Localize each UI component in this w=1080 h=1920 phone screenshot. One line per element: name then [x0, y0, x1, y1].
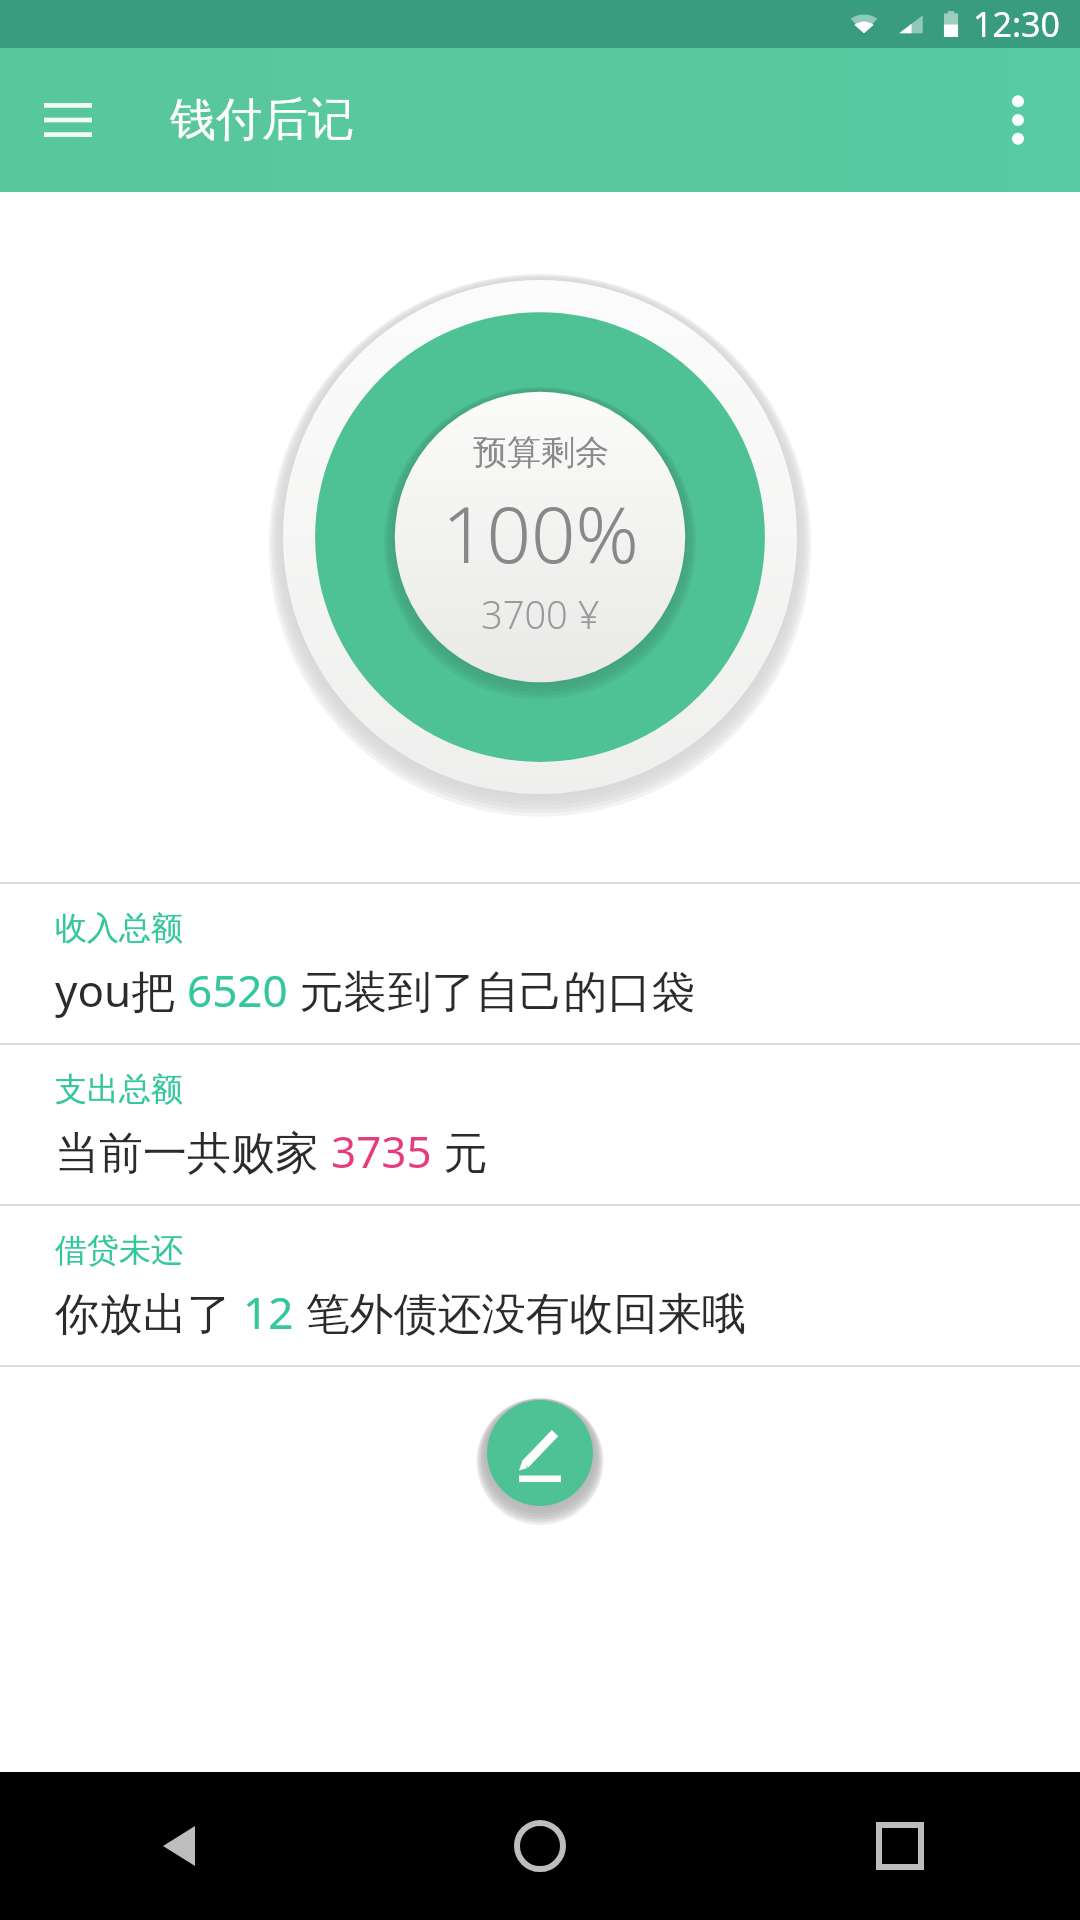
staticText: 当前一共败家 — [55, 1121, 331, 1181]
staticText: 支出总额 — [55, 1069, 183, 1109]
button[interactable]: Home — [360, 1772, 720, 1920]
staticText: 3735 — [331, 1121, 432, 1181]
staticText: 100% — [442, 480, 639, 586]
button[interactable]: Recent apps — [720, 1772, 1080, 1920]
staticText: 笔外债还没有收回来哦 — [294, 1282, 746, 1342]
staticText: 元装到了自己的口袋 — [288, 960, 696, 1020]
button[interactable]: More options — [978, 80, 1058, 160]
staticText: 借贷未还 — [55, 1230, 183, 1270]
staticText: 收入总额 — [55, 908, 183, 948]
button[interactable]: Navigation menu — [32, 84, 104, 156]
staticText: you把 — [55, 960, 187, 1020]
button[interactable]: 支出总额 — [0, 1045, 1080, 1204]
staticText: 12 — [243, 1282, 294, 1342]
staticText: 你放出了 — [55, 1282, 243, 1342]
button[interactable]: 收入总额 — [0, 884, 1080, 1043]
staticText: 预算剩余 — [473, 431, 609, 474]
staticText: 元 — [432, 1121, 488, 1181]
staticText: 钱付后记 — [170, 91, 354, 149]
staticText: 6520 — [187, 960, 288, 1020]
staticText: 12:30 — [973, 1, 1060, 47]
staticText: 3700 ¥ — [481, 588, 600, 640]
button[interactable]: Back — [0, 1772, 360, 1920]
button[interactable]: Add record — [480, 1393, 600, 1513]
button[interactable]: Budget remaining dial — [275, 272, 805, 802]
button[interactable]: 借贷未还 — [0, 1206, 1080, 1365]
